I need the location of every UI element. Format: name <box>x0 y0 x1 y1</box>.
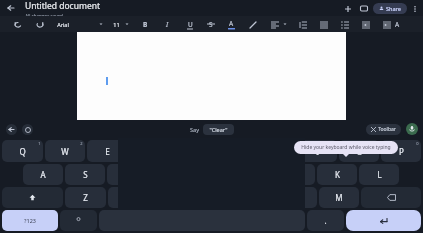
button[interactable]: Microphone <box>406 123 418 135</box>
button[interactable]: Enter <box>346 210 421 231</box>
button[interactable]: Back <box>4 1 18 15</box>
staticText: P <box>399 146 404 157</box>
button[interactable]: Backspace <box>361 187 421 208</box>
staticText: K <box>335 169 340 180</box>
button[interactable]: Bold <box>140 19 151 30</box>
staticText: 1 <box>38 141 41 146</box>
button[interactable]: Highlight <box>247 19 258 30</box>
staticText: 11 <box>113 21 120 28</box>
button[interactable]: Toolbar <box>366 124 401 135</box>
button[interactable]: Bulleted list <box>318 19 329 30</box>
button[interactable]: Redo <box>34 19 45 30</box>
staticText: . <box>324 215 327 226</box>
button[interactable]: 11 <box>113 21 120 28</box>
button[interactable]: Decrease indent <box>360 19 371 30</box>
staticText: A <box>40 169 46 180</box>
button[interactable]: Q <box>2 140 43 162</box>
staticText: L <box>377 169 382 180</box>
button[interactable]: S <box>65 164 105 185</box>
button[interactable]: Hide your keyboard while voice typing <box>294 141 398 154</box>
button[interactable]: E <box>87 140 127 162</box>
button[interactable]: ?123 <box>2 210 58 231</box>
staticText: 8 <box>332 141 335 146</box>
staticText: Q <box>19 146 26 157</box>
staticText: E <box>105 146 110 157</box>
staticText: O <box>356 146 363 157</box>
button[interactable]: Numbered list <box>339 19 350 30</box>
button[interactable]: Add <box>341 2 354 15</box>
staticText: Arial <box>57 21 69 28</box>
button[interactable]: U <box>255 140 295 162</box>
button[interactable]: Clear formatting <box>392 19 403 30</box>
button[interactable]: X <box>108 187 149 208</box>
button[interactable]: Alignment <box>269 19 280 30</box>
staticText: Toolbar <box>378 126 396 133</box>
button[interactable]: N <box>277 187 317 208</box>
button[interactable]: A <box>23 164 63 185</box>
button[interactable]: Z <box>65 187 106 208</box>
button[interactable]: K <box>317 164 357 185</box>
staticText: Share <box>386 5 401 12</box>
button[interactable]: Emoji <box>60 210 97 231</box>
button[interactable]: I <box>297 140 337 162</box>
staticText: S <box>83 169 88 180</box>
button[interactable]: Share <box>373 3 407 14</box>
button[interactable]: Help <box>22 124 33 135</box>
button[interactable]: Comments <box>357 2 370 15</box>
staticText: M <box>335 192 343 203</box>
staticText: A <box>395 20 400 29</box>
button[interactable]: Underline <box>184 19 195 30</box>
button[interactable]: Line spacing <box>297 19 308 30</box>
button[interactable]: L <box>359 164 399 185</box>
button[interactable]: . <box>307 210 344 231</box>
button[interactable]: Italic <box>162 19 173 30</box>
button[interactable]: Shift <box>2 187 63 208</box>
button[interactable]: P <box>381 140 421 162</box>
button[interactable]: Strikethrough <box>205 19 216 30</box>
button[interactable]: Back <box>6 124 17 135</box>
button[interactable]: Arial <box>55 21 71 28</box>
button[interactable]: D <box>107 164 147 185</box>
button[interactable]: Undo <box>12 19 23 30</box>
staticText: W <box>61 146 69 157</box>
button[interactable]: "Clear" <box>203 124 234 135</box>
staticText: U <box>188 20 193 29</box>
button[interactable]: J <box>275 164 315 185</box>
button[interactable]: More options <box>409 3 420 14</box>
staticText: ?123 <box>24 217 36 224</box>
button[interactable]: W <box>45 140 85 162</box>
button[interactable]: O <box>339 140 379 162</box>
staticText: 0 <box>416 141 419 146</box>
staticText: "Clear" <box>209 126 228 133</box>
button[interactable]: M <box>319 187 359 208</box>
button[interactable]: Increase indent <box>381 19 392 30</box>
button[interactable]: Text color <box>226 19 237 30</box>
staticText: S <box>209 20 213 29</box>
